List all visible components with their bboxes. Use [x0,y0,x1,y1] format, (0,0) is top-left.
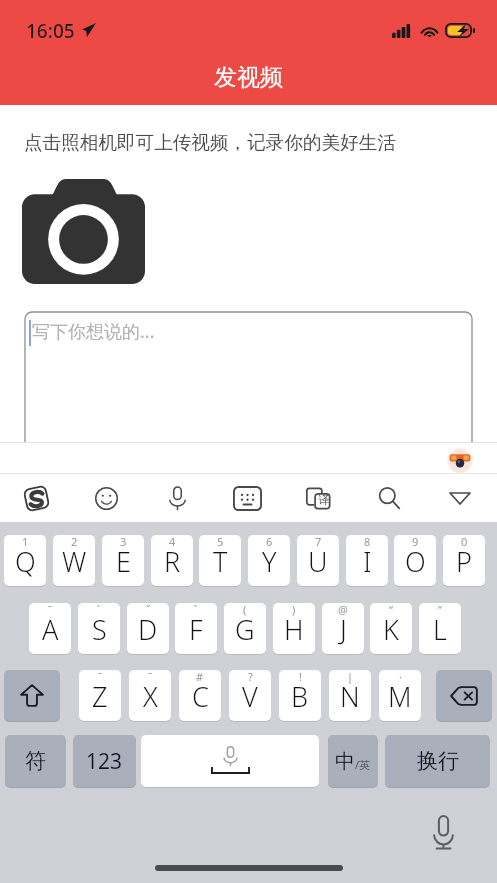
staticText: ˉ [148,670,153,684]
staticText: ” [438,603,442,617]
staticText: H [284,611,304,648]
staticText: 写下你想说的... [32,319,155,344]
staticText: O [405,543,426,580]
staticText: F [189,611,203,648]
staticText: 1 [22,535,29,549]
staticText: E [116,543,131,580]
staticText: 换行 [417,748,459,774]
staticText: P [456,543,472,580]
staticText: · [399,670,402,684]
staticText: R [164,543,181,580]
staticText: ˊ [97,603,101,617]
button[interactable]: ˊ [78,603,120,654]
staticText: 2 [71,535,78,549]
button[interactable]: ( [224,603,266,654]
button[interactable]: Symbols [5,735,66,787]
button[interactable]: ˋ [175,603,217,654]
button[interactable]: 1 [4,535,46,586]
staticText: I [363,543,372,580]
staticText: 8 [364,535,371,549]
staticText: Z [92,678,108,715]
button[interactable]: Search [367,474,411,522]
button[interactable]: Hide keyboard [438,474,482,522]
button[interactable]: Translate [296,474,340,522]
button[interactable]: ˉ [79,670,121,721]
staticText: 16:05 [26,18,75,44]
button[interactable]: Chinese English toggle [328,735,378,787]
staticText: C [192,678,209,715]
staticText: 符 [25,748,46,774]
staticText: B [291,678,309,715]
staticText: D [138,611,158,648]
button[interactable]: Shift [4,670,60,721]
staticText: 5 [217,535,224,549]
staticText: U [308,543,328,580]
button[interactable]: ˉ [29,603,71,654]
button[interactable]: Voice input [155,474,199,522]
staticText: A [42,611,59,648]
button[interactable]: ˉ [129,670,171,721]
staticText: K [383,611,399,648]
staticText: V [242,678,258,715]
button[interactable]: ) [273,603,315,654]
staticText: ( [243,603,247,617]
button[interactable]: Enter [385,735,490,787]
button[interactable]: · [379,670,421,721]
staticText: G [235,611,255,648]
staticText: L [433,611,447,648]
button[interactable]: Keyboard layout [225,474,269,522]
button[interactable]: 6 [248,535,290,586]
staticText: ˇ [146,603,151,617]
button[interactable]: ? [229,670,271,721]
staticText: S [92,611,107,648]
button[interactable]: Space [141,735,319,787]
button[interactable]: ! [279,670,321,721]
button[interactable]: @ [322,603,364,654]
staticText: 7 [315,535,322,549]
staticText: T [213,543,228,580]
button[interactable]: 3 [102,535,144,586]
staticText: W [62,543,87,580]
button[interactable]: 8 [346,535,388,586]
button[interactable]: ” [419,603,461,654]
staticText: 4 [169,535,176,549]
staticText: | [347,670,354,684]
staticText: Q [15,543,36,580]
button[interactable]: ˇ [127,603,169,654]
staticText: 123 [86,747,123,776]
staticText: 译 [318,493,329,507]
staticText: ) [292,603,296,617]
button[interactable]: 5 [199,535,241,586]
button[interactable]: Voice [424,813,462,851]
staticText: ! [299,670,302,684]
button[interactable]: 0 [443,535,485,586]
button[interactable]: “ [370,603,412,654]
button[interactable]: Numbers [73,735,136,787]
staticText: 9 [412,535,419,549]
button[interactable]: 2 [53,535,95,586]
staticText: 6 [266,535,273,549]
button[interactable]: | [329,670,371,721]
staticText: M [388,678,412,715]
button[interactable]: Open camera [22,179,145,284]
button[interactable]: Input method [14,474,58,522]
button[interactable]: # [179,670,221,721]
button[interactable]: 写下你想说的... [25,312,472,462]
button[interactable]: 9 [394,535,436,586]
staticText: 0 [461,535,468,549]
staticText: 点击照相机即可上传视频，记录你的美好生活 [24,131,396,154]
button[interactable]: 4 [151,535,193,586]
staticText: 3 [120,535,127,549]
button[interactable]: Emoji [84,474,128,522]
staticText: N [340,678,360,715]
staticText: J [340,611,347,648]
button[interactable]: 7 [297,535,339,586]
staticText: ˉ [98,670,103,684]
staticText: X [143,678,158,715]
staticText: Y [262,543,277,580]
staticText: 中 [335,749,355,774]
staticText: ? [248,670,253,684]
staticText: # [196,670,204,684]
staticText: ˋ [194,603,198,617]
button[interactable]: Backspace [436,670,492,721]
